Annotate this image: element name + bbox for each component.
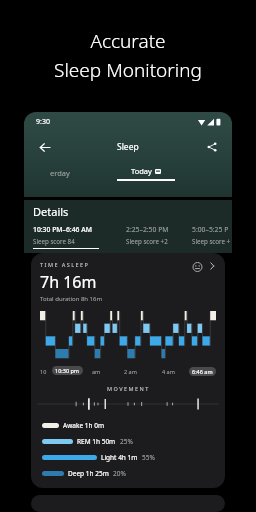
staticText: 55% — [142, 453, 155, 462]
staticText: REM 1h 50m — [77, 437, 116, 446]
staticText: 7h 16m — [40, 271, 97, 293]
staticText: Sleep score + — [192, 237, 231, 245]
staticText: Sleep score +2 — [126, 237, 168, 245]
staticText: 2 am — [124, 368, 137, 375]
staticText: Sleep score 84 — [33, 237, 75, 245]
staticText: Accurate — [90, 28, 166, 54]
staticText: 6:46 am — [192, 368, 213, 375]
button[interactable]: 2:25–2:50 PM — [126, 225, 192, 248]
staticText: 4 am — [162, 368, 175, 375]
staticText: 25% — [120, 437, 133, 446]
staticText: am — [92, 368, 101, 375]
staticText: T I M E A S L E E P — [40, 261, 88, 268]
button[interactable]: Back — [34, 137, 54, 157]
staticText: Sleep Monitoring — [54, 57, 202, 83]
button[interactable]: Today — [104, 166, 188, 181]
button[interactable]: erday — [24, 162, 70, 184]
staticText: 10 — [40, 368, 47, 375]
button[interactable]: 5:00–5:25 P — [192, 225, 232, 248]
staticText: Total duration 8h 16m — [40, 295, 103, 303]
button[interactable]: 10:30 PM–6:46 AM — [33, 225, 126, 249]
button[interactable]: Share — [202, 137, 222, 157]
staticText: 2:25–2:50 PM — [126, 225, 169, 234]
staticText: Sleep — [117, 141, 139, 153]
staticText: erday — [50, 168, 70, 178]
staticText: 9:30 — [36, 117, 50, 127]
staticText: Light 4h 1m — [101, 453, 138, 462]
staticText: 20% — [113, 469, 126, 478]
staticText: Deep 1h 25m — [68, 469, 109, 478]
staticText: Awake 1h 0m — [63, 421, 104, 430]
button[interactable]: T I M E A S L E E P — [40, 261, 216, 303]
staticText: Today — [131, 166, 152, 176]
staticText: M O V E M E N T — [107, 385, 149, 392]
staticText: 5:00–5:25 P — [192, 225, 229, 234]
staticText: 10:30 PM–6:46 AM — [33, 225, 92, 234]
staticText: 10:30 pm — [55, 367, 80, 374]
staticText: Details — [33, 204, 69, 219]
